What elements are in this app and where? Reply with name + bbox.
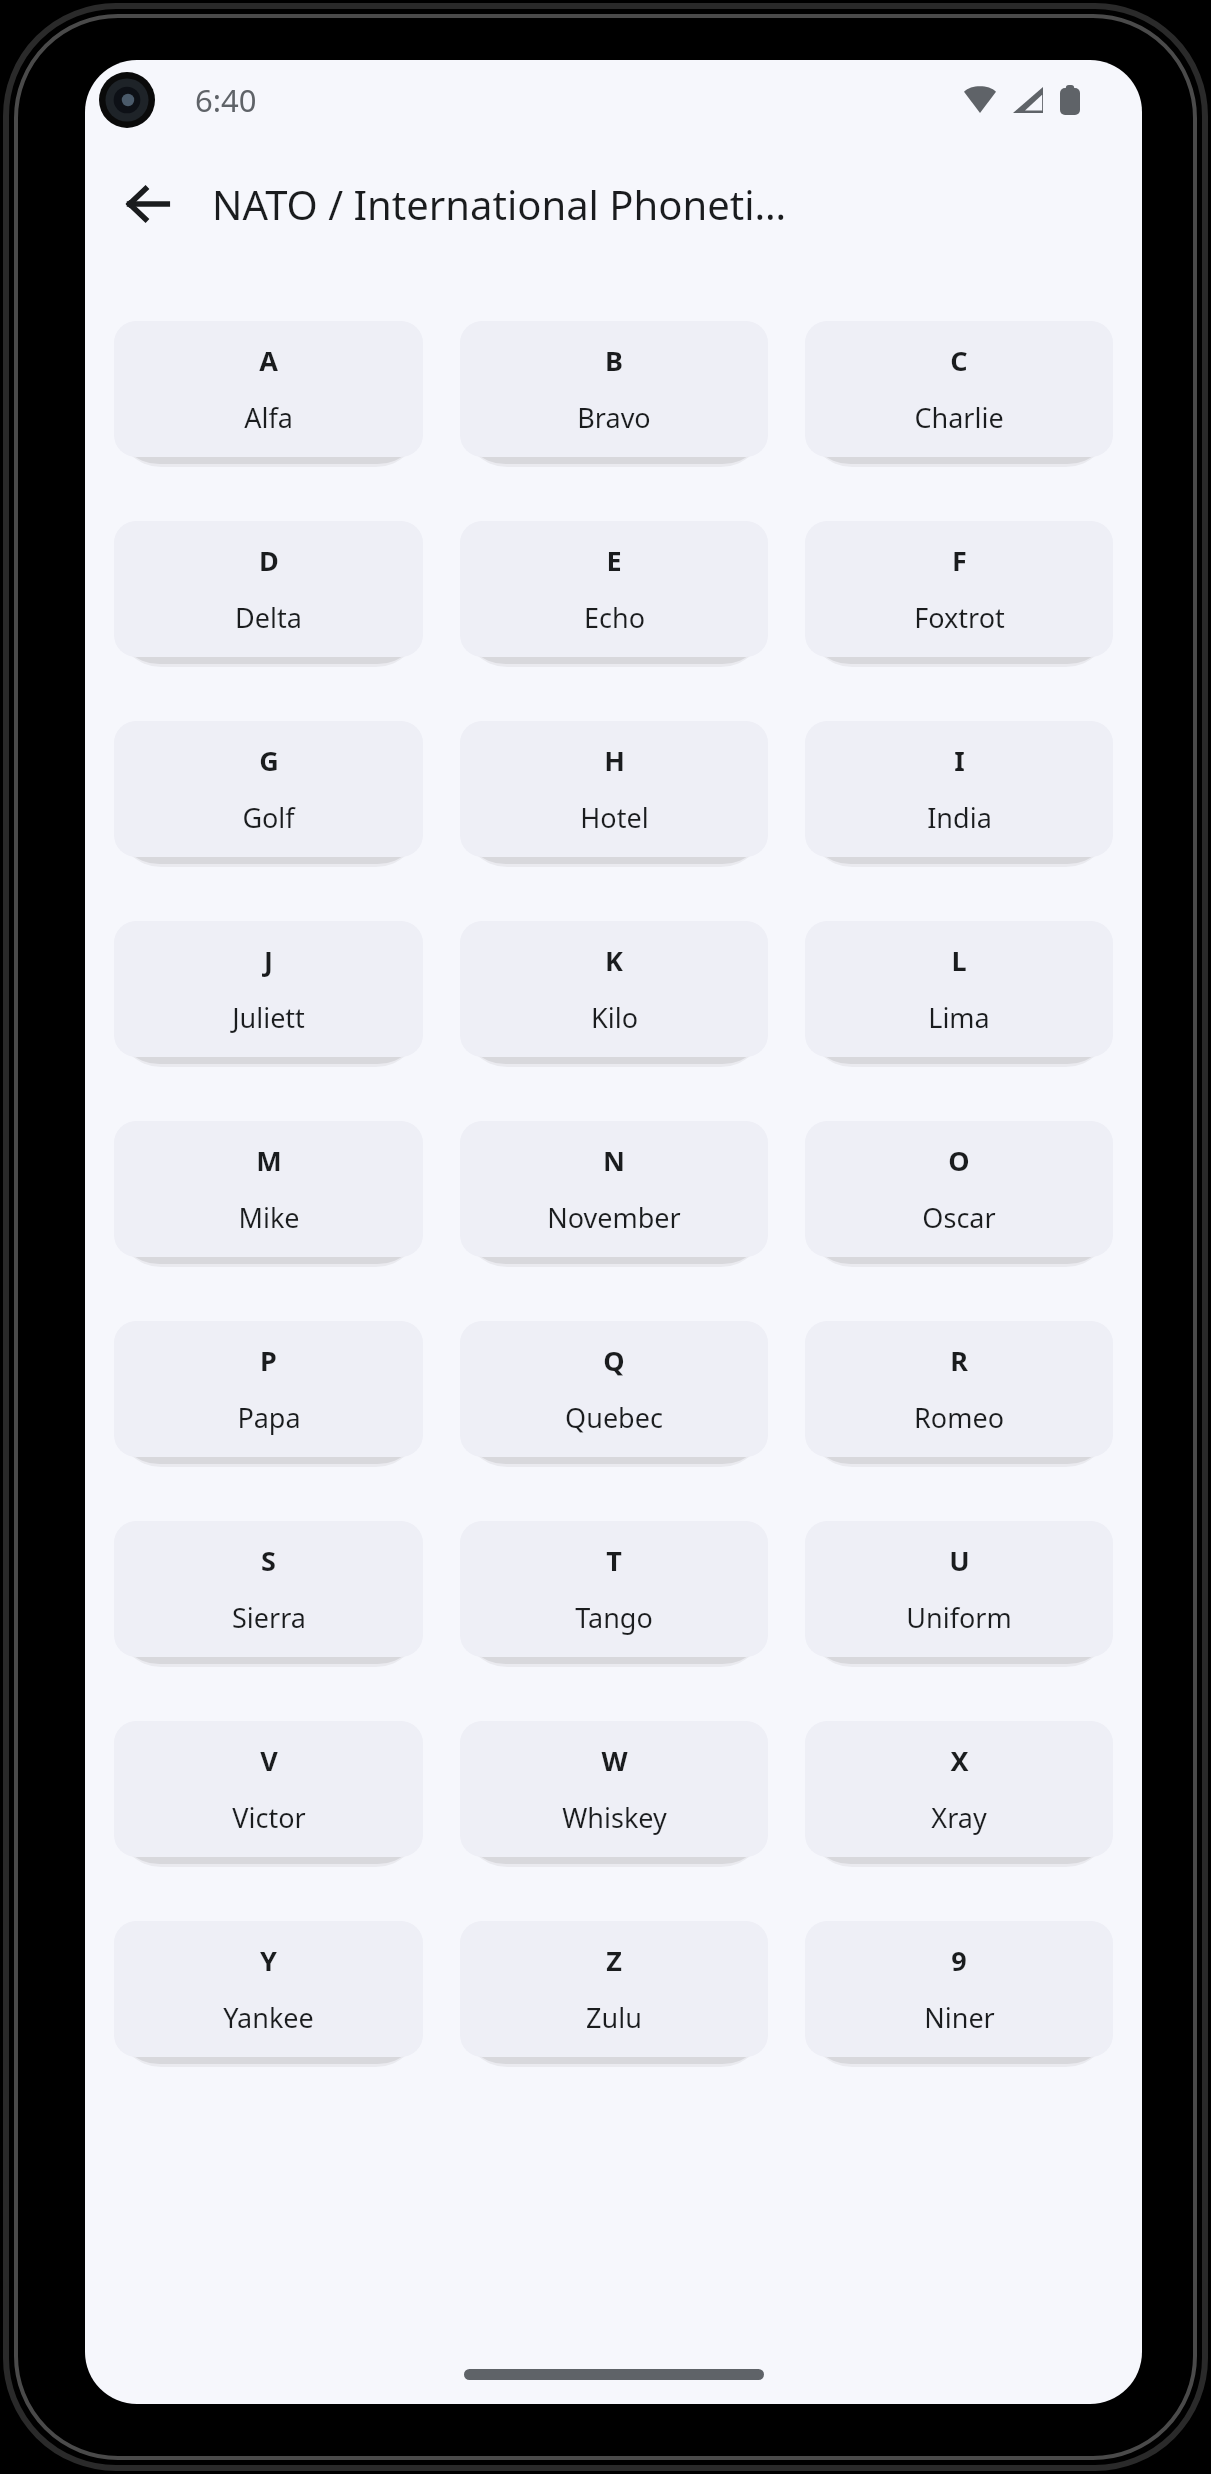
staticText: D — [259, 542, 279, 579]
staticText: J — [264, 942, 273, 979]
staticText: Xray — [931, 1799, 987, 1836]
button[interactable]: K — [460, 921, 768, 1057]
staticText: S — [261, 1542, 276, 1579]
staticText: Kilo — [591, 999, 638, 1036]
button[interactable]: C — [805, 321, 1113, 457]
staticText: Q — [603, 1342, 625, 1379]
staticText: Hotel — [580, 799, 649, 836]
button[interactable]: Q — [460, 1321, 768, 1457]
staticText: T — [606, 1542, 622, 1579]
staticText: Foxtrot — [914, 599, 1005, 636]
staticText: India — [927, 799, 992, 836]
staticText: I — [954, 742, 965, 779]
staticText: W — [601, 1742, 628, 1779]
staticText: V — [260, 1742, 278, 1779]
staticText: Alfa — [244, 399, 293, 436]
staticText: Delta — [235, 599, 302, 636]
staticText: H — [604, 742, 625, 779]
button[interactable]: E — [460, 521, 768, 657]
button[interactable]: S — [114, 1521, 423, 1657]
staticText: X — [950, 1742, 969, 1779]
button[interactable]: L — [805, 921, 1113, 1057]
staticText: Romeo — [914, 1399, 1004, 1436]
staticText: Quebec — [565, 1399, 663, 1436]
staticText: Golf — [242, 799, 295, 836]
staticText: P — [260, 1342, 277, 1379]
staticText: N — [603, 1142, 625, 1179]
staticText: K — [605, 942, 623, 979]
staticText: Z — [606, 1942, 622, 1979]
staticText: NATO / International Phoneti… — [212, 177, 787, 231]
button[interactable]: B — [460, 321, 768, 457]
staticText: L — [951, 942, 967, 979]
button[interactable]: H — [460, 721, 768, 857]
button[interactable]: O — [805, 1121, 1113, 1257]
staticText: G — [259, 742, 279, 779]
button[interactable]: F — [805, 521, 1113, 657]
staticText: C — [950, 342, 968, 379]
staticText: Uniform — [906, 1599, 1012, 1636]
button[interactable]: U — [805, 1521, 1113, 1657]
staticText: Niner — [924, 1999, 995, 2036]
button[interactable]: Y — [114, 1921, 423, 2057]
button[interactable]: 9 — [805, 1921, 1113, 2057]
staticText: A — [259, 342, 278, 379]
staticText: November — [547, 1199, 681, 1236]
staticText: Tango — [575, 1599, 653, 1636]
staticText: Sierra — [232, 1599, 306, 1636]
staticText: Whiskey — [562, 1799, 667, 1836]
button[interactable]: V — [114, 1721, 423, 1857]
button[interactable]: X — [805, 1721, 1113, 1857]
staticText: O — [948, 1142, 970, 1179]
staticText: Victor — [232, 1799, 306, 1836]
staticText: M — [256, 1142, 282, 1179]
staticText: R — [950, 1342, 968, 1379]
button[interactable]: T — [460, 1521, 768, 1657]
staticText: E — [606, 542, 622, 579]
button[interactable]: P — [114, 1321, 423, 1457]
button[interactable]: A — [114, 321, 423, 457]
staticText: Zulu — [586, 1999, 642, 2036]
staticText: Mike — [238, 1199, 300, 1236]
button[interactable]: M — [114, 1121, 423, 1257]
staticText: F — [952, 542, 967, 579]
button[interactable]: Z — [460, 1921, 768, 2057]
staticText: Charlie — [914, 399, 1004, 436]
button[interactable]: N — [460, 1121, 768, 1257]
staticText: 6:40 — [195, 79, 257, 121]
button[interactable]: Back — [110, 166, 186, 242]
staticText: U — [949, 1542, 970, 1579]
staticText: Juliett — [232, 999, 305, 1036]
button[interactable]: W — [460, 1721, 768, 1857]
staticText: Bravo — [577, 399, 651, 436]
staticText: B — [605, 342, 623, 379]
staticText: Y — [260, 1942, 277, 1979]
button[interactable]: R — [805, 1321, 1113, 1457]
button[interactable]: G — [114, 721, 423, 857]
staticText: Papa — [237, 1399, 301, 1436]
staticText: Lima — [928, 999, 990, 1036]
button[interactable]: I — [805, 721, 1113, 857]
staticText: 9 — [951, 1942, 967, 1979]
staticText: Yankee — [223, 1999, 314, 2036]
button[interactable]: J — [114, 921, 423, 1057]
staticText: Oscar — [922, 1199, 996, 1236]
button[interactable]: D — [114, 521, 423, 657]
staticText: Echo — [584, 599, 645, 636]
